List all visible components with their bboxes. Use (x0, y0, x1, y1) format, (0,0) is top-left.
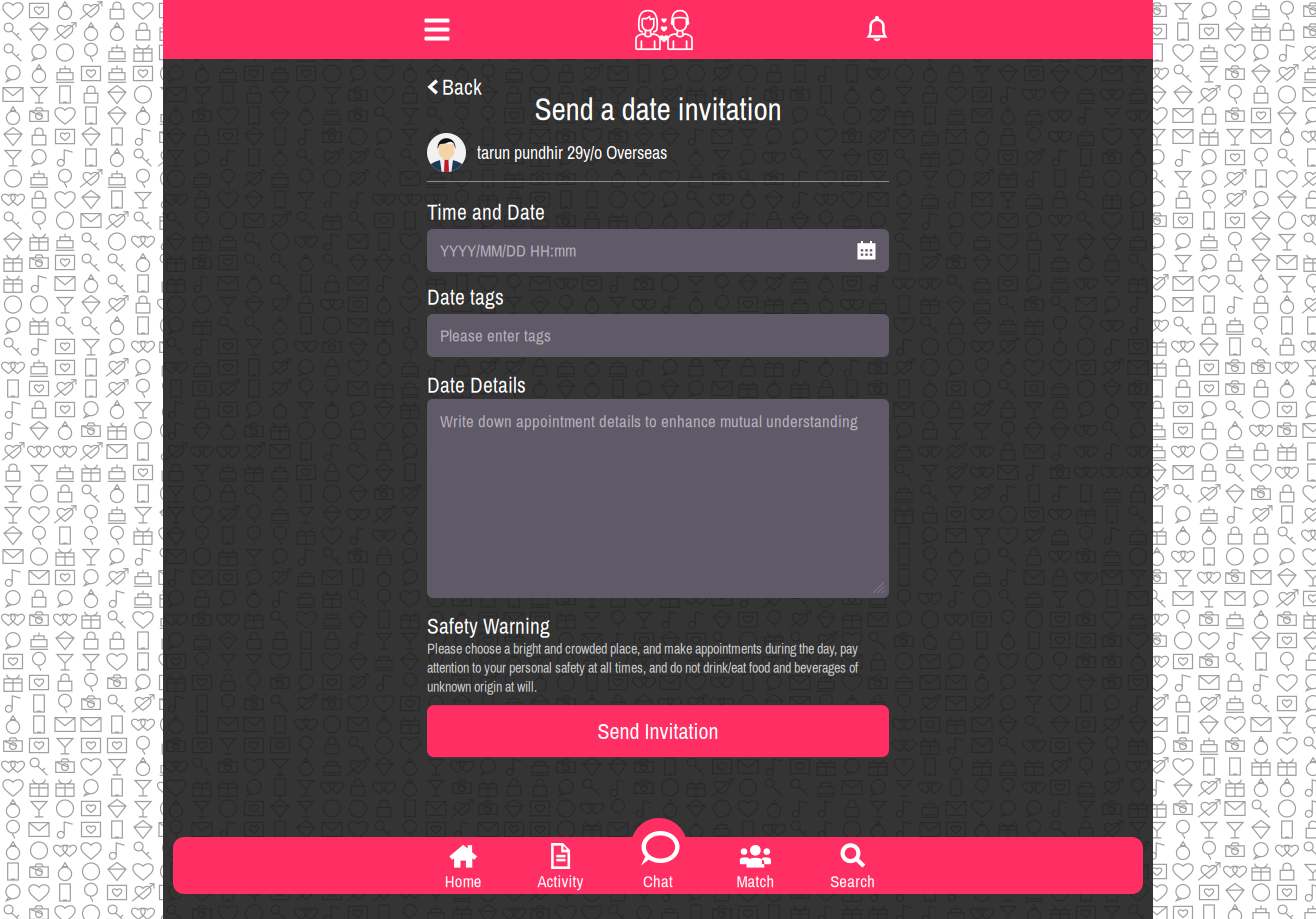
staticText: Activity (538, 870, 584, 892)
button[interactable]: Chat (609, 837, 707, 894)
staticText: Match (736, 870, 774, 892)
staticText: Search (830, 870, 875, 892)
staticText: Safety Warning (427, 612, 550, 640)
staticText: Please choose a bright and crowded place… (427, 639, 858, 696)
button[interactable]: Search (804, 837, 901, 894)
staticText: Write down appointment details to enhanc… (440, 410, 858, 432)
button[interactable]: Notifications (843, 0, 911, 59)
button[interactable]: Back (427, 77, 482, 97)
staticText: tarun pundhir 29y/o Overseas (477, 140, 667, 165)
staticText: Chat (643, 870, 673, 892)
staticText: Date tags (427, 283, 504, 311)
button[interactable]: Home (414, 837, 512, 894)
button[interactable]: Menu (402, 0, 472, 59)
staticText: Please enter tags (440, 324, 551, 347)
staticText: Date Details (427, 371, 526, 399)
staticText: Send a date invitation (534, 88, 781, 130)
staticText: Time and Date (427, 198, 545, 226)
staticText: Send Invitation (597, 716, 718, 746)
staticText: Back (442, 73, 482, 101)
button[interactable]: Activity (512, 837, 609, 894)
button[interactable]: Send Invitation (427, 705, 889, 757)
staticText: Home (445, 870, 482, 892)
staticText: YYYY/MM/DD HH:mm (440, 239, 576, 262)
button[interactable]: Match (707, 837, 804, 894)
